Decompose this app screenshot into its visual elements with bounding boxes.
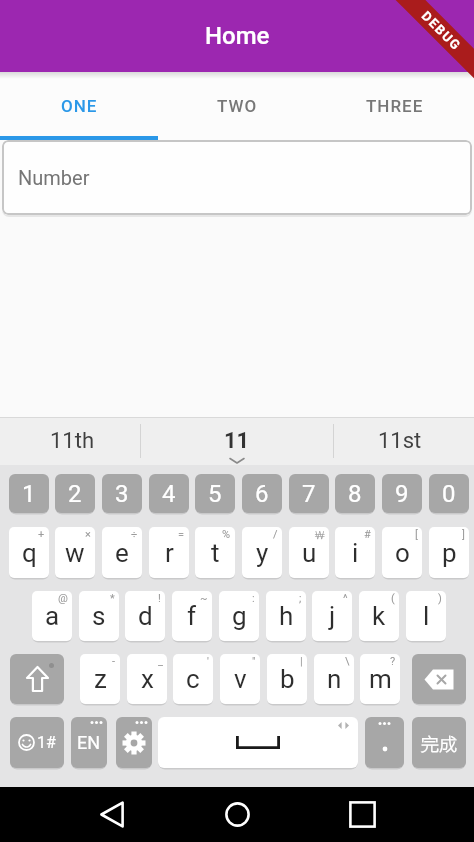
button[interactable] [201, 787, 273, 842]
staticText: % [222, 528, 231, 541]
staticText: : [252, 592, 255, 605]
button[interactable]: q [9, 527, 49, 578]
button[interactable]: y [242, 527, 282, 578]
button[interactable]: x [127, 654, 167, 704]
button[interactable] [158, 717, 358, 768]
staticText: ￦ [314, 528, 325, 542]
staticText: TWO [217, 96, 258, 116]
staticText: o [395, 538, 410, 568]
button[interactable]: 2 [55, 474, 95, 513]
staticText: z [94, 664, 107, 694]
staticText: \ [345, 655, 350, 668]
button[interactable]: 9 [382, 474, 422, 513]
button[interactable]: 1# [10, 717, 64, 768]
button[interactable]: v [220, 654, 260, 704]
button[interactable]: c [173, 654, 213, 704]
staticText: THREE [366, 96, 424, 116]
button[interactable]: f [172, 591, 212, 641]
button[interactable]: l [406, 591, 446, 641]
staticText: ^ [343, 592, 348, 605]
staticText: ONE [61, 96, 98, 116]
button[interactable]: 1 [9, 474, 49, 513]
staticText: - [112, 655, 116, 668]
button[interactable]: ONE [0, 72, 158, 140]
staticText: ] [462, 528, 465, 541]
staticText: a [45, 601, 60, 631]
button[interactable] [10, 654, 64, 704]
staticText: f [187, 601, 197, 631]
button[interactable]: 5 [195, 474, 235, 513]
button[interactable]: m [360, 654, 400, 704]
staticText: q [22, 538, 37, 568]
button[interactable]: 11 [141, 417, 333, 465]
staticText: u [302, 538, 317, 568]
button[interactable]: 11th [0, 417, 140, 465]
staticText: Home [205, 22, 270, 50]
button[interactable]: Number [2, 140, 472, 215]
staticText: _ [158, 655, 163, 668]
staticText: l [423, 601, 430, 631]
staticText: k [372, 601, 386, 631]
staticText: e [115, 538, 129, 568]
staticText: i [352, 538, 359, 568]
button[interactable]: 6 [242, 474, 282, 513]
staticText: 5 [208, 480, 222, 508]
staticText: h [279, 601, 294, 631]
button[interactable]: 完成 [412, 717, 466, 768]
button[interactable]: k [359, 591, 399, 641]
staticText: 3 [115, 480, 129, 508]
staticText: ( [391, 592, 395, 605]
button[interactable]: THREE [316, 72, 474, 140]
button[interactable] [76, 787, 148, 842]
button[interactable]: 11st [334, 417, 474, 465]
staticText: x [141, 664, 154, 694]
button[interactable]: h [266, 591, 306, 641]
staticText: | [300, 655, 303, 668]
staticText: r [165, 538, 174, 568]
button[interactable]: w [55, 527, 95, 578]
staticText: ? [390, 655, 396, 668]
button[interactable] [116, 717, 152, 768]
staticText: 0 [442, 480, 456, 508]
button[interactable]: z [80, 654, 120, 704]
staticText: w [65, 538, 85, 568]
button[interactable]: r [149, 527, 189, 578]
staticText: [ [415, 528, 418, 541]
button[interactable]: s [79, 591, 119, 641]
button[interactable]: a [32, 591, 72, 641]
staticText: 11 [224, 428, 250, 454]
staticText: × [85, 528, 91, 541]
staticText: # [364, 528, 371, 541]
staticText: 11st [378, 428, 422, 454]
button[interactable]: g [219, 591, 259, 641]
staticText: 9 [395, 480, 409, 508]
button[interactable] [365, 717, 404, 768]
staticText: 7 [302, 480, 316, 508]
button[interactable]: 3 [102, 474, 142, 513]
staticText: 8 [348, 480, 362, 508]
button[interactable]: 0 [429, 474, 469, 513]
button[interactable]: j [312, 591, 352, 641]
staticText: Number [18, 166, 90, 189]
button[interactable]: o [382, 527, 422, 578]
button[interactable]: 7 [289, 474, 329, 513]
button[interactable]: n [314, 654, 354, 704]
button[interactable]: 8 [335, 474, 375, 513]
button[interactable]: b [267, 654, 307, 704]
staticText: 4 [162, 480, 176, 508]
button[interactable] [326, 787, 398, 842]
button[interactable]: i [335, 527, 375, 578]
button[interactable]: 4 [149, 474, 189, 513]
staticText: 1 [22, 480, 36, 508]
button[interactable]: EN [71, 717, 107, 768]
button[interactable]: u [289, 527, 329, 578]
staticText: t [211, 538, 220, 568]
staticText: ! [158, 592, 161, 605]
button[interactable] [412, 654, 466, 704]
button[interactable]: p [429, 527, 469, 578]
button[interactable]: d [125, 591, 165, 641]
button[interactable]: e [102, 527, 142, 578]
button[interactable]: TWO [158, 72, 316, 140]
staticText: ÷ [131, 528, 138, 541]
button[interactable]: t [195, 527, 235, 578]
